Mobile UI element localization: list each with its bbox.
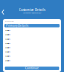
button[interactable]: Continue xyxy=(5,67,59,70)
staticText: Detail item xyxy=(5,38,10,40)
staticText: Detail item xyxy=(5,30,10,31)
staticText: Customize Details xyxy=(19,8,45,12)
staticText: Detail item xyxy=(5,34,10,36)
staticText: Detail item xyxy=(5,60,10,62)
staticText: Select the information to display xyxy=(22,12,41,14)
button[interactable]: Back xyxy=(0,8,6,14)
staticText: Detail item xyxy=(5,55,10,57)
staticText: INFORMATION xyxy=(5,21,14,22)
staticText: Detail item xyxy=(5,51,10,53)
staticText: Continue xyxy=(25,66,39,70)
button[interactable]: Primary Details xyxy=(4,24,60,27)
staticText: Primary Details xyxy=(6,24,28,27)
staticText: Detail item xyxy=(5,47,10,49)
staticText: Detail item xyxy=(5,43,10,44)
